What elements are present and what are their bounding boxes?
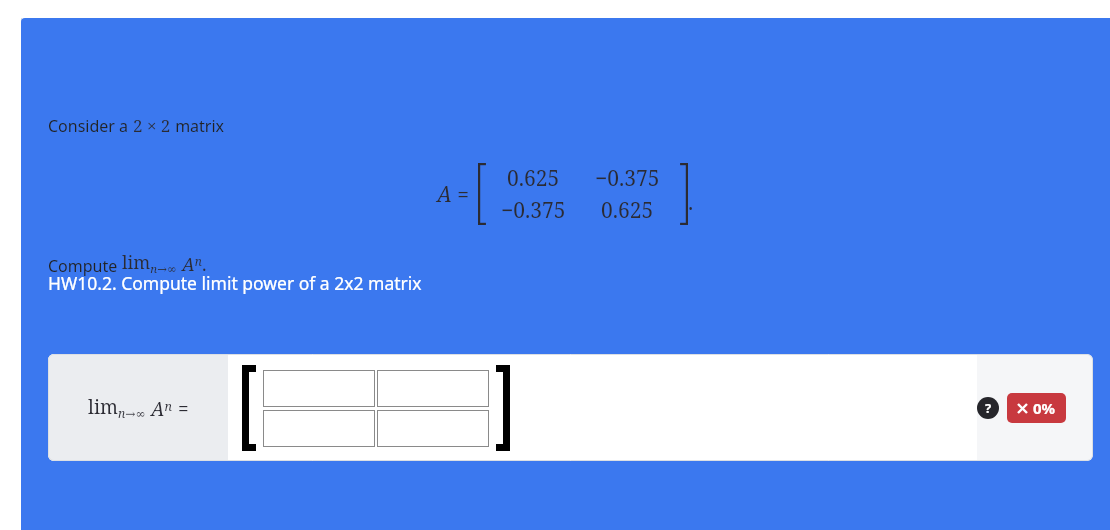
staticText: ?	[985, 399, 992, 417]
staticText: limn→∞	[122, 250, 177, 277]
staticText: −0.375	[501, 196, 566, 225]
button[interactable]: limn→∞	[48, 354, 228, 461]
staticText: =	[178, 396, 189, 422]
button[interactable]: Help	[977, 397, 999, 419]
button[interactable]	[377, 370, 489, 407]
button[interactable]	[377, 410, 489, 447]
staticText: .	[202, 252, 207, 277]
staticText: HW10.2. Compute limit power of a 2x2 mat…	[48, 271, 422, 295]
staticText: 0.625	[507, 164, 560, 193]
staticText: −0.375	[595, 164, 660, 193]
staticText: Consider a	[48, 115, 133, 137]
staticText: matrix	[171, 115, 225, 137]
staticText: A =	[437, 180, 475, 209]
staticText: An	[182, 252, 202, 277]
staticText: 0%	[1033, 398, 1056, 418]
staticText: .	[688, 188, 694, 217]
staticText: Compute	[48, 255, 122, 277]
button[interactable]	[263, 370, 375, 407]
staticText: 0.625	[601, 196, 654, 225]
button[interactable]: 0%	[1007, 393, 1066, 423]
button[interactable]	[263, 410, 375, 447]
button[interactable]: HW10.2. Compute limit power of a 2x2 mat…	[21, 18, 1110, 530]
staticText: 2 × 2	[133, 114, 171, 137]
staticText: An	[151, 396, 172, 422]
staticText: limn→∞	[88, 394, 146, 422]
